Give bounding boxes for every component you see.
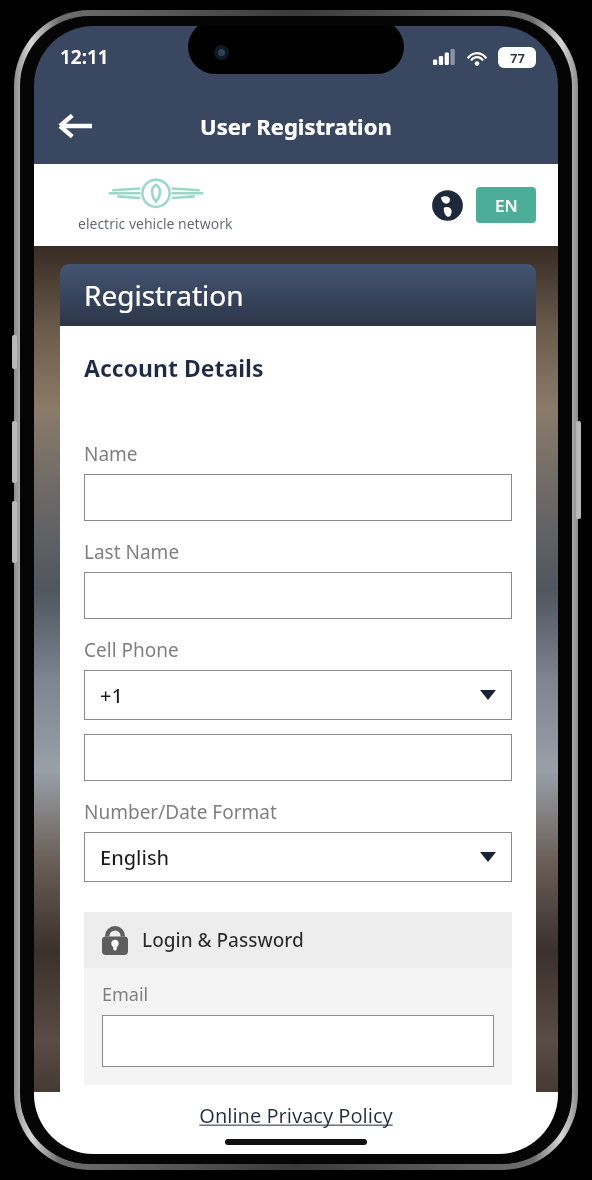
button[interactable] bbox=[84, 474, 512, 521]
button[interactable]: +1 bbox=[84, 670, 512, 720]
button[interactable]: English bbox=[84, 832, 512, 882]
staticText: Email bbox=[102, 982, 149, 1007]
button[interactable] bbox=[84, 734, 512, 781]
staticText: Login & Password bbox=[142, 927, 304, 953]
staticText: Account Details bbox=[84, 352, 264, 383]
staticText: Cell Phone bbox=[84, 637, 179, 663]
staticText: Name bbox=[84, 441, 138, 467]
button[interactable]: Online Privacy Policy bbox=[199, 1102, 393, 1129]
button[interactable] bbox=[102, 1015, 494, 1067]
staticText: EN bbox=[495, 194, 518, 217]
button[interactable]: Change language bbox=[432, 190, 462, 220]
button[interactable] bbox=[84, 572, 512, 619]
staticText: User Registration bbox=[200, 111, 392, 141]
staticText: 77 bbox=[510, 49, 525, 67]
staticText: Last Name bbox=[84, 539, 180, 565]
button[interactable]: Back bbox=[48, 99, 102, 153]
staticText: Number/Date Format bbox=[84, 799, 277, 825]
staticText: +1 bbox=[100, 682, 123, 709]
staticText: electric vehicle network bbox=[78, 214, 233, 233]
button[interactable]: EN bbox=[476, 187, 536, 223]
staticText: 12:11 bbox=[60, 44, 109, 70]
staticText: English bbox=[100, 844, 170, 871]
staticText: Registration bbox=[84, 276, 244, 314]
